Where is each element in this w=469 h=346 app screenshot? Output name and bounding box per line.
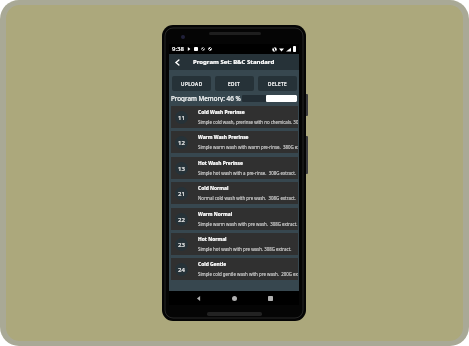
staticText: Simple warm wash with warm pre-rinse. 38… [198,144,298,150]
button[interactable]: 21 [171,182,298,204]
button[interactable]: 24 [171,258,298,280]
staticText: Cold Wash Prerinse [198,109,245,116]
button[interactable]: 22 [171,208,298,230]
button[interactable]: 23 [171,233,298,255]
button[interactable]: DELETE [258,76,297,91]
staticText: Simple hot wash with pre wash. 308G extr… [198,246,292,252]
staticText: 13 [178,165,185,173]
button[interactable]: EDIT [215,76,254,91]
staticText: Program Memory: 46 % [171,94,241,102]
staticText: Simple cold gentle wash with pre wash. 2… [198,271,298,277]
button[interactable]: 12 [171,131,298,153]
staticText: 11 [178,114,185,122]
staticText: Normal cold wash with pre wash. 308G ext… [198,195,296,201]
button[interactable]: 11 [171,106,298,128]
staticText: 21 [178,190,185,198]
button[interactable]: Navigate up [169,54,185,70]
staticText: Simple warm wash with pre wash. 308G ext… [198,221,298,227]
staticText: Simple hot wash with a pre-rinse. 308G e… [198,170,296,176]
staticText: 24 [178,266,185,274]
staticText: 23 [178,241,185,249]
staticText: Warm Normal [198,211,233,218]
staticText: Cold Normal [198,185,229,192]
staticText: 12 [178,139,185,147]
staticText: 22 [178,216,185,224]
staticText: Cold Gentle [198,261,227,268]
staticText: EDIT [228,81,241,87]
staticText: Hot Normal [198,236,227,243]
staticText: UPLOAD [181,81,203,87]
staticText: 9:38 [172,45,184,53]
button[interactable]: UPLOAD [172,76,211,91]
staticText: Hot Wash Prerinse [198,160,243,167]
button[interactable]: Home [227,291,241,305]
button[interactable]: Back [191,291,205,305]
staticText: Warm Wash Prerinse [198,134,249,141]
staticText: Simple cold wash, prerinse with no chemi… [198,119,298,125]
button[interactable]: 13 [171,157,298,179]
staticText: Program Set: B&C Standard [193,58,275,66]
staticText: DELETE [268,81,288,87]
button[interactable]: Recent apps [263,291,277,305]
